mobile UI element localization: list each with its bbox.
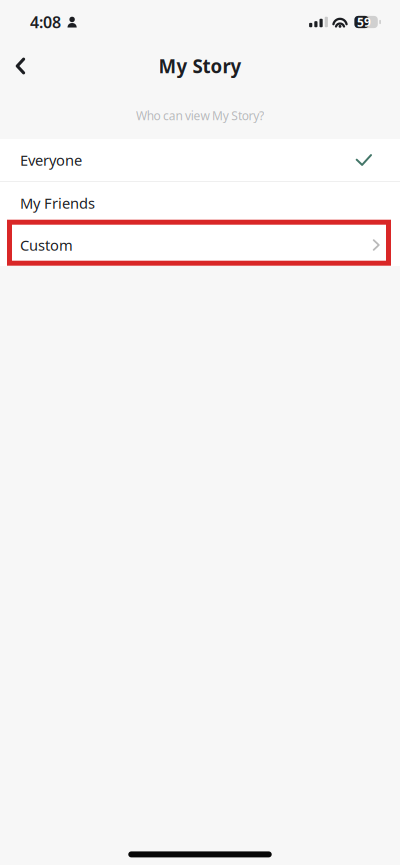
- staticText: Everyone: [20, 150, 82, 170]
- staticText: My Friends: [20, 193, 95, 213]
- staticText: My Story: [158, 54, 241, 78]
- staticText: 59: [357, 14, 371, 30]
- staticText: Custom: [20, 235, 73, 255]
- staticText: 4:08: [30, 11, 61, 33]
- button[interactable]: Everyone: [0, 139, 400, 181]
- button[interactable]: Custom: [0, 224, 400, 266]
- button[interactable]: My Friends: [0, 182, 400, 224]
- staticText: Who can view My Story?: [136, 107, 264, 123]
- button[interactable]: Back: [0, 44, 46, 88]
